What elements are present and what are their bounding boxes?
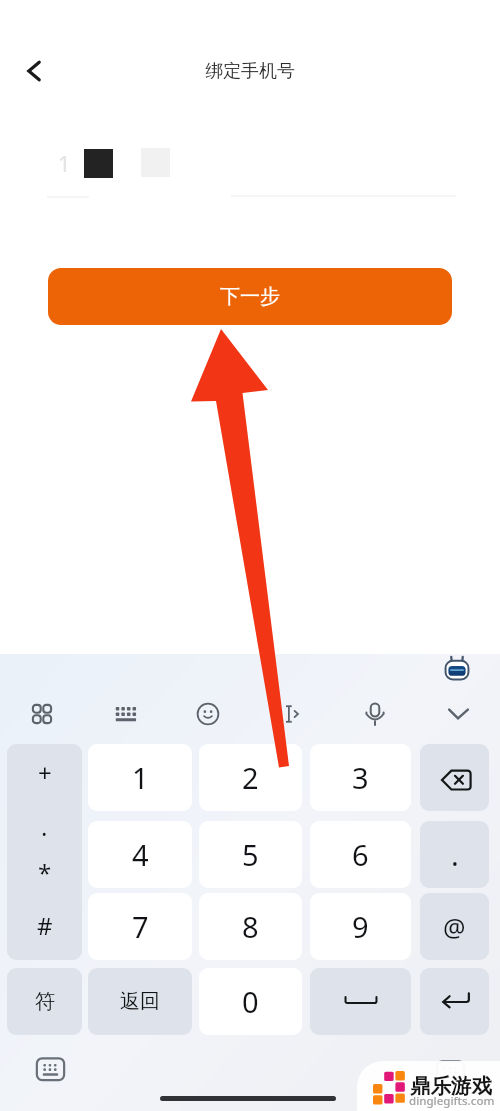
button[interactable]: Voice input: [355, 694, 395, 734]
button[interactable]: 返回: [88, 968, 192, 1035]
staticText: .: [451, 835, 459, 874]
staticText: #: [37, 909, 53, 941]
staticText: 绑定手机号: [0, 60, 500, 83]
button[interactable]: 5: [199, 821, 302, 888]
button[interactable]: Enter: [420, 968, 489, 1035]
staticText: 1: [58, 148, 71, 178]
staticText: @: [443, 910, 466, 944]
staticText: ·: [41, 817, 48, 849]
button[interactable]: Emoji: [188, 694, 228, 734]
staticText: 2: [242, 758, 259, 797]
staticText: 0: [242, 982, 259, 1021]
staticText: 返回: [120, 989, 160, 1014]
staticText: 7: [132, 907, 149, 946]
button[interactable]: Keyboard layout: [105, 694, 145, 734]
button[interactable]: 3: [310, 744, 411, 811]
staticText: 鼎乐游戏: [410, 1073, 492, 1099]
button[interactable]: Input method mascot: [444, 655, 470, 681]
staticText: 6: [352, 835, 369, 874]
button[interactable]: Back: [12, 49, 56, 93]
button[interactable]: Space: [310, 968, 411, 1035]
button[interactable]: 下一步: [48, 268, 452, 325]
button[interactable]: 0: [199, 968, 302, 1035]
button[interactable]: 2: [199, 744, 302, 811]
button[interactable]: 7: [88, 893, 192, 960]
button[interactable]: 6: [310, 821, 411, 888]
staticText: +: [38, 756, 52, 788]
staticText: 4: [132, 835, 149, 874]
staticText: 符: [35, 989, 55, 1014]
staticText: 3: [352, 758, 369, 797]
button[interactable]: 1: [88, 744, 192, 811]
button[interactable]: 9: [310, 893, 411, 960]
button[interactable]: Switch keyboard: [28, 1047, 72, 1091]
staticText: 1: [132, 758, 149, 797]
button[interactable]: Backspace: [420, 744, 489, 811]
button[interactable]: Keyboard settings: [428, 1050, 472, 1094]
button[interactable]: Hide keyboard: [438, 694, 478, 734]
staticText: 5: [242, 835, 259, 874]
staticText: 9: [352, 907, 369, 946]
button[interactable]: @: [420, 893, 489, 960]
button[interactable]: Apps: [22, 694, 62, 734]
button[interactable]: .: [420, 821, 489, 888]
button[interactable]: 4: [88, 821, 192, 888]
button[interactable]: 8: [199, 893, 302, 960]
staticText: *: [38, 856, 52, 888]
button[interactable]: Text edit: [272, 694, 312, 734]
staticText: 8: [242, 907, 259, 946]
button[interactable]: 符: [7, 968, 82, 1035]
staticText: 下一步: [220, 284, 280, 309]
staticText: dinglegifts.com: [409, 1093, 495, 1109]
button[interactable]: Symbols: [7, 744, 82, 960]
